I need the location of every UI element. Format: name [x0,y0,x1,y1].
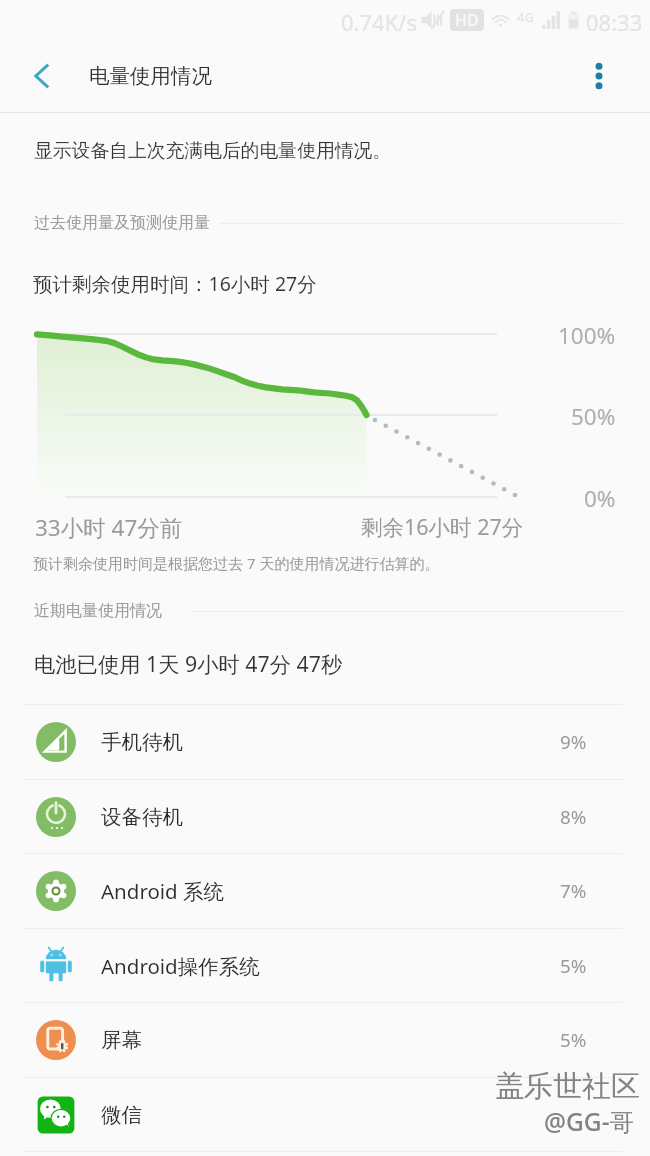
staticText: 33小时 47分前 [35,512,183,543]
staticText: 100% [558,320,616,351]
button[interactable]: Android操作系统 [0,928,650,1003]
button[interactable]: 微信 [0,1077,650,1152]
staticText: 7% [560,878,587,904]
staticText: 5% [560,953,587,979]
staticText: 显示设备自上次充满电后的电量使用情况。 [34,139,392,163]
staticText: 电量使用情况 [89,63,212,89]
button[interactable]: Back [16,50,68,102]
staticText: 5% [560,1027,587,1053]
staticText: 8% [560,804,587,830]
staticText: 50% [571,401,616,432]
button[interactable]: Android 系统 [0,853,650,928]
staticText: 剩余16小时 27分 [361,512,524,541]
staticText: 0.74K/s [341,7,417,37]
staticText: 屏幕 [101,1027,142,1053]
staticText: 预计剩余使用时间：16小时 27分 [33,270,317,297]
staticText: 过去使用量及预测使用量 [34,213,210,233]
staticText: 盖乐世社区 [495,1068,640,1105]
staticText: 手机待机 [101,729,183,755]
staticText: 近期电量使用情况 [34,601,162,621]
staticText: 设备待机 [101,804,183,830]
button[interactable]: 手机待机 [0,704,650,779]
button[interactable]: 屏幕 [0,1002,650,1077]
staticText: 预计剩余使用时间是根据您过去 7 天的使用情况进行估算的。 [33,553,440,573]
staticText: 08:33 [586,7,643,37]
button[interactable]: More options [573,50,625,102]
staticText: Android操作系统 [101,952,260,980]
staticText: 4G [517,8,534,26]
staticText: 9% [560,729,587,755]
staticText: 微信 [101,1102,142,1128]
staticText: Android 系统 [101,877,225,905]
button[interactable]: 设备待机 [0,779,650,854]
staticText: 0% [584,483,616,514]
staticText: @GG-哥 [544,1105,635,1138]
staticText: HD [455,9,479,31]
staticText: 电池已使用 1天 9小时 47分 47秒 [34,649,343,678]
